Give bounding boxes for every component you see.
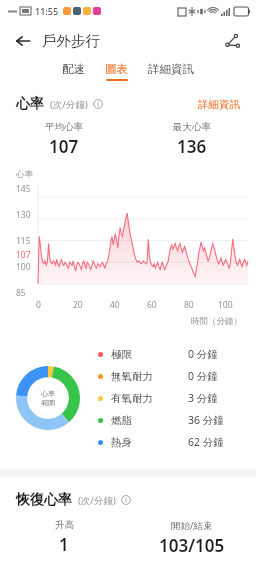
staticText: 40 <box>110 299 120 311</box>
staticText: 0 分鐘 <box>188 369 244 383</box>
staticText: 時間（分鐘） <box>191 316 242 327</box>
staticText: (次/分鐘) <box>50 98 88 111</box>
button[interactable]: 極限 <box>98 343 244 365</box>
staticText: 無氧耐力 <box>111 370 153 383</box>
staticText: 戶外步行 <box>42 32 100 50</box>
staticText: 極限 <box>111 348 132 361</box>
staticText: 心率 <box>16 169 33 180</box>
button[interactable]: 熱身 <box>98 431 244 453</box>
staticText: 36 分鐘 <box>188 413 244 427</box>
staticText: 3 分鐘 <box>188 391 244 405</box>
staticText: (次/分鐘) <box>78 494 116 507</box>
staticText: 107 <box>49 135 79 158</box>
staticText: 詳細資訊 <box>148 62 194 76</box>
staticText: 0 分鐘 <box>188 347 244 361</box>
button[interactable]: 最大心率 <box>128 121 256 158</box>
staticText: 145 <box>16 183 31 195</box>
button[interactable]: 恢復心率 <box>0 491 256 509</box>
button[interactable]: 燃脂 <box>98 409 244 431</box>
staticText: 136 <box>177 135 207 158</box>
button[interactable]: 圖表 <box>102 60 131 83</box>
staticText: 60 <box>147 299 157 311</box>
staticText: 範圍 <box>41 398 55 407</box>
staticText: 最大心率 <box>173 121 211 133</box>
staticText: 恢復心率 <box>16 491 72 509</box>
staticText: 配速 <box>62 62 85 76</box>
staticText: 圖表 <box>105 62 128 76</box>
staticText: 11:55 <box>35 5 59 17</box>
staticText: 開始/結束 <box>171 519 213 532</box>
staticText: 100 <box>16 261 31 273</box>
staticText: 100 <box>218 299 233 311</box>
staticText: 62 分鐘 <box>188 435 244 449</box>
staticText: 80 <box>184 299 194 311</box>
button[interactable]: 配速 <box>59 60 88 83</box>
button[interactable]: 心率 <box>0 95 256 113</box>
staticText: 20 <box>73 299 83 311</box>
staticText: 心率 <box>41 389 55 398</box>
staticText: 1 <box>59 533 69 556</box>
button[interactable]: 詳細資訊 <box>145 60 197 83</box>
staticText: 升高 <box>55 519 74 531</box>
staticText: 130 <box>16 209 31 221</box>
button[interactable]: 有氧耐力 <box>98 387 244 409</box>
staticText: 有氧耐力 <box>111 392 153 405</box>
staticText: 熱身 <box>111 436 132 449</box>
staticText: 平均心率 <box>45 121 83 133</box>
staticText: 107 <box>16 249 31 261</box>
button[interactable]: 升高 <box>0 519 128 556</box>
staticText: 詳細資訊 <box>198 98 240 111</box>
button[interactable]: Back <box>8 26 38 56</box>
staticText: 85 <box>16 287 26 299</box>
staticText: 115 <box>16 235 31 247</box>
button[interactable]: 無氧耐力 <box>98 365 244 387</box>
staticText: 0 <box>36 299 41 311</box>
button[interactable]: 平均心率 <box>0 121 128 158</box>
staticText: 燃脂 <box>111 414 132 427</box>
button[interactable]: Share <box>218 27 246 55</box>
staticText: 心率 <box>16 95 44 113</box>
button[interactable]: 開始/結束 <box>128 519 256 557</box>
staticText: 103/105 <box>159 534 225 557</box>
